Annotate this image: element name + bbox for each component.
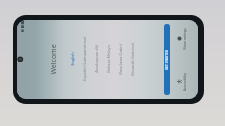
button[interactable]: Bahasa Melayu <box>102 20 114 99</box>
staticText: Bahasa Melayu <box>106 45 111 73</box>
staticText: Basa Jawa (Latin) <box>118 44 123 75</box>
staticText: Vision settings <box>183 28 187 50</box>
staticText: Azərbaycan dili <box>94 45 99 73</box>
staticText: English <box>70 52 75 66</box>
staticText: Bahasa Melayu <box>106 45 111 73</box>
button[interactable]: English <box>66 20 78 99</box>
button[interactable]: GET STARTED <box>164 24 170 95</box>
staticText: Azərbaycan dili <box>94 45 99 73</box>
button[interactable]: Basa Jawa (Latin) <box>114 20 126 99</box>
button[interactable]: Accessibility <box>177 71 187 93</box>
staticText: GET STARTED <box>165 49 169 70</box>
staticText: Bosanski (latinica) <box>130 43 135 76</box>
button[interactable]: Español (Latinoamérica) <box>78 20 90 99</box>
staticText: Español (Latinoamérica) <box>82 37 87 81</box>
button[interactable]: Bahasa Melayu <box>102 20 114 99</box>
button[interactable]: Azərbaycan dili <box>90 20 102 99</box>
button[interactable]: Vision settings <box>177 26 187 52</box>
staticText: English <box>70 52 75 66</box>
staticText: Vision settings <box>183 28 187 50</box>
button[interactable]: Bosanski (latinica) <box>126 20 138 99</box>
staticText: Welcome <box>49 44 59 75</box>
button[interactable]: GET STARTED <box>164 24 170 95</box>
button[interactable]: Basa Jawa (Latin) <box>114 20 126 99</box>
button[interactable]: Vision settings <box>177 26 187 52</box>
button[interactable]: Español (Latinoamérica) <box>78 20 90 99</box>
staticText: Bosanski (latinica) <box>130 43 135 76</box>
button[interactable]: Accessibility <box>177 71 187 93</box>
button[interactable]: Bosanski (latinica) <box>126 20 138 99</box>
staticText: Welcome <box>49 44 59 75</box>
staticText: Accessibility <box>183 73 187 91</box>
staticText: Español (Latinoamérica) <box>82 37 87 81</box>
staticText: Accessibility <box>183 73 187 91</box>
staticText: GET STARTED <box>165 49 169 70</box>
button[interactable]: English <box>66 20 78 99</box>
staticText: Basa Jawa (Latin) <box>118 44 123 75</box>
button[interactable]: Azərbaycan dili <box>90 20 102 99</box>
